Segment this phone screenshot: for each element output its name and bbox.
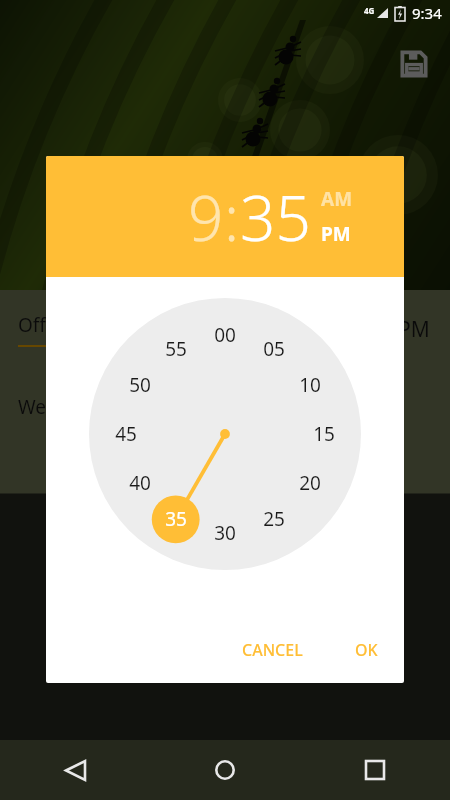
staticText: :: [224, 175, 240, 259]
button[interactable]: Minute clock face: [89, 298, 361, 570]
button[interactable]: Weekdays: [0, 368, 450, 493]
button[interactable]: Home: [201, 746, 249, 794]
staticText: 45: [115, 421, 137, 447]
staticText: 20: [299, 470, 321, 496]
staticText: 05: [263, 336, 285, 362]
button[interactable]: Save: [398, 48, 430, 80]
staticText: 15: [313, 421, 335, 447]
button[interactable]: Back: [51, 746, 99, 794]
button[interactable]: 9: [188, 175, 224, 259]
button[interactable]: Offset: [0, 290, 450, 368]
staticText: CANCEL: [242, 639, 303, 661]
button[interactable]: Recents: [351, 746, 399, 794]
staticText: 30: [214, 520, 236, 546]
staticText: Offset: [18, 312, 73, 338]
staticText: 35: [165, 506, 187, 532]
staticText: 4G: [364, 5, 375, 16]
staticText: 25: [263, 506, 285, 532]
staticText: Weekdays: [18, 394, 109, 420]
button[interactable]: OK: [341, 629, 392, 671]
button[interactable]: PM: [321, 221, 351, 247]
button[interactable]: AM: [321, 186, 353, 212]
staticText: 40: [129, 470, 151, 496]
staticText: 10: [299, 372, 321, 398]
staticText: 9:34: [412, 3, 442, 23]
staticText: 00: [214, 322, 236, 348]
button[interactable]: 35: [240, 175, 311, 259]
button[interactable]: CANCEL: [228, 629, 317, 671]
staticText: PM: [398, 315, 430, 344]
staticText: 55: [165, 336, 187, 362]
staticText: OK: [355, 639, 378, 661]
staticText: 50: [129, 372, 151, 398]
